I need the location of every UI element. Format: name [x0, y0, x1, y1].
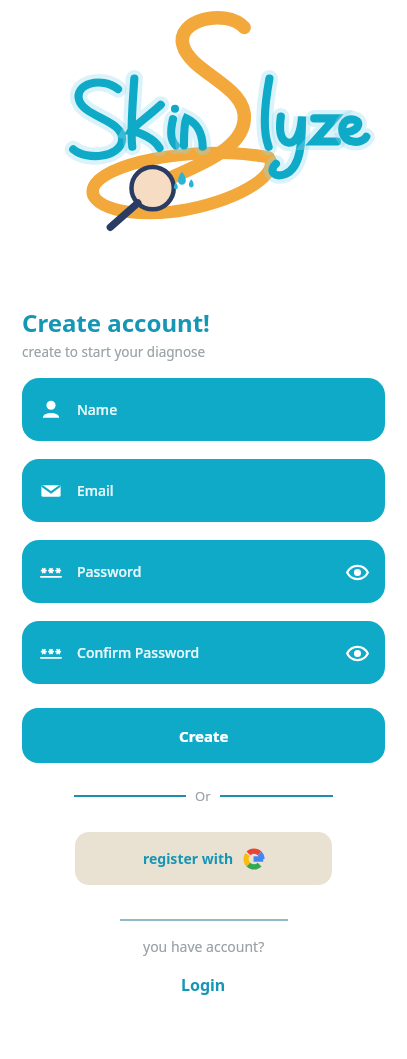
button[interactable]: Show password	[335, 550, 379, 594]
staticText: Or	[195, 787, 211, 805]
button[interactable]: register with	[75, 832, 332, 885]
staticText: Password	[77, 562, 142, 581]
button[interactable]: Create	[22, 708, 385, 763]
staticText: register with	[143, 849, 234, 868]
staticText: create to start your diagnose	[22, 343, 206, 361]
staticText: Login	[181, 974, 226, 996]
staticText: Create account!	[22, 306, 210, 339]
button[interactable]: Password	[22, 540, 385, 603]
button[interactable]: Show password	[335, 631, 379, 675]
button[interactable]: Confirm Password	[22, 621, 385, 684]
staticText: Name	[77, 400, 118, 419]
button[interactable]: Email	[22, 459, 385, 522]
button[interactable]: Name	[22, 378, 385, 441]
staticText: Create	[179, 726, 229, 746]
button[interactable]: Login	[181, 974, 226, 996]
staticText: you have account?	[143, 937, 265, 956]
staticText: Email	[77, 481, 114, 500]
staticText: Confirm Password	[77, 643, 200, 662]
